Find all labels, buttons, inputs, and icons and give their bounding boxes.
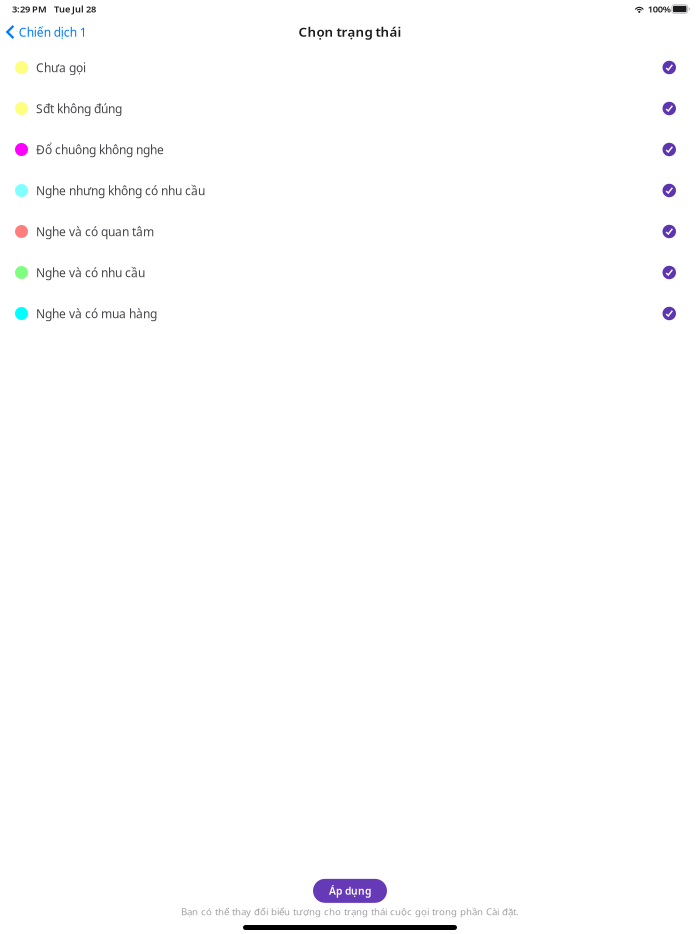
button[interactable]: Chiến dịch 1 [0, 20, 87, 44]
staticText: 100% [648, 3, 671, 15]
staticText: Nghe nhưng không có nhu cầu [36, 182, 205, 198]
button[interactable]: Nghe và có quan tâm [0, 211, 700, 252]
staticText: Chưa gọi [36, 59, 86, 75]
staticText: Chiến dịch 1 [19, 24, 87, 40]
staticText: Sđt không đúng [36, 100, 122, 116]
staticText: Nghe và có nhu cầu [36, 264, 145, 280]
button[interactable]: Nghe và có nhu cầu [0, 252, 700, 293]
button[interactable]: Sđt không đúng [0, 88, 700, 129]
staticText: Nghe và có quan tâm [36, 223, 154, 239]
button[interactable]: Chưa gọi [0, 47, 700, 88]
staticText: 3:29 PM [12, 3, 47, 15]
staticText: Chọn trạng thái [298, 22, 401, 41]
button[interactable]: Nghe nhưng không có nhu cầu [0, 170, 700, 211]
button[interactable]: Đổ chuông không nghe [0, 129, 700, 170]
staticText: Đổ chuông không nghe [36, 141, 164, 157]
staticText: Bạn có thể thay đổi biểu tượng cho trạng… [181, 905, 519, 918]
staticText: Áp dụng [329, 884, 371, 898]
staticText: Tue Jul 28 [54, 3, 96, 15]
button[interactable]: Áp dụng [313, 879, 387, 903]
button[interactable]: Nghe và có mua hàng [0, 293, 700, 334]
staticText: Nghe và có mua hàng [36, 305, 157, 321]
